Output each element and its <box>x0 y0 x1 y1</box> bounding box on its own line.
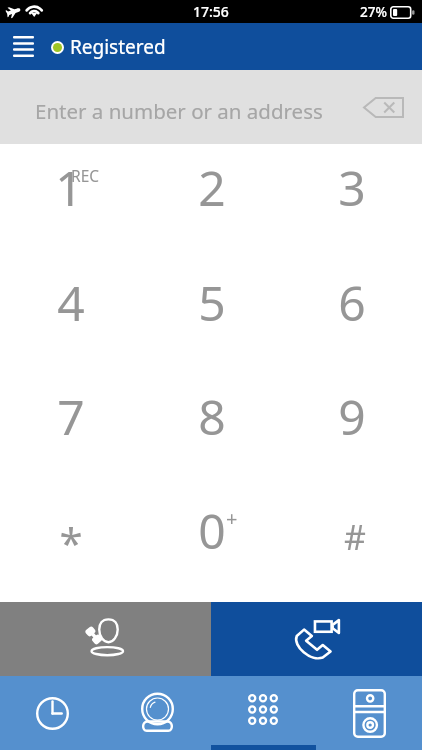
staticText: 4 <box>57 270 85 335</box>
button[interactable]: Dialpad <box>210 676 316 750</box>
button[interactable]: 0 <box>141 474 282 588</box>
button[interactable]: Video call <box>211 602 422 676</box>
staticText: 6 <box>338 270 366 335</box>
button[interactable]: 2 <box>141 131 282 245</box>
staticText: 2 <box>198 155 226 220</box>
staticText: # <box>344 514 366 560</box>
button[interactable]: 9 <box>281 360 422 474</box>
button[interactable]: 1 <box>0 131 141 245</box>
button[interactable]: 6 <box>281 246 422 360</box>
button[interactable]: Enter a number or an address <box>0 70 344 144</box>
staticText: 8 <box>198 384 226 449</box>
button[interactable]: 8 <box>141 360 282 474</box>
staticText: 9 <box>338 384 366 449</box>
button[interactable]: 4 <box>0 246 141 360</box>
staticText: * <box>59 514 83 571</box>
button[interactable]: 5 <box>141 246 282 360</box>
button[interactable]: Cameras <box>105 676 210 750</box>
staticText: 5 <box>198 270 226 335</box>
staticText: 1 <box>55 155 83 220</box>
button[interactable]: # <box>281 474 422 588</box>
staticText: Registered <box>70 34 166 60</box>
staticText: Enter a number or an address <box>35 97 323 125</box>
staticText: 3 <box>338 155 366 220</box>
button[interactable]: Open navigation menu <box>0 23 47 70</box>
staticText: 27% <box>360 3 387 21</box>
staticText: 7 <box>57 384 85 449</box>
button[interactable]: Door station <box>316 676 422 750</box>
staticText: + <box>226 505 238 532</box>
button[interactable]: Recent calls <box>0 676 105 750</box>
button[interactable]: 3 <box>281 131 422 245</box>
button[interactable]: 7 <box>0 360 141 474</box>
button[interactable]: Audio call <box>0 602 211 676</box>
button[interactable]: Backspace <box>344 70 422 144</box>
staticText: 0 <box>198 498 226 563</box>
button[interactable]: * <box>0 474 141 588</box>
staticText: REC <box>71 165 100 186</box>
staticText: 17:56 <box>193 2 229 21</box>
